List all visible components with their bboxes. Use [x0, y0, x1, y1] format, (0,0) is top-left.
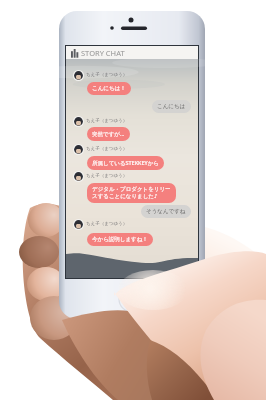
button[interactable]: 突然ですが…	[87, 127, 130, 141]
staticText: STORY CHAT	[81, 48, 125, 58]
staticText: ちえ子（まつゆう）	[86, 72, 128, 78]
staticText: ちえ子（まつゆう）	[86, 173, 128, 179]
staticText: デジタル・プロダクトをリリー	[92, 186, 171, 193]
staticText: スすることになりました♪	[92, 193, 158, 200]
staticText: ちえ子（まつゆう）	[86, 221, 128, 227]
button[interactable]: こんにちは！	[87, 82, 131, 95]
button[interactable]: STORY CHAT	[66, 46, 198, 59]
staticText: ちえ子（まつゆう）	[86, 146, 128, 152]
staticText: こんにちは！	[92, 85, 126, 92]
staticText: そうなんですね	[146, 208, 186, 215]
button[interactable]: 所属しているSTEKKEYから	[87, 156, 164, 170]
button[interactable]: 今から説明しますね！	[87, 233, 153, 246]
staticText: こんにちは	[157, 103, 186, 110]
button[interactable]: そうなんですね	[141, 205, 191, 218]
staticText: ちえ子（まつゆう）	[86, 118, 128, 124]
staticText: 今から説明しますね！	[92, 236, 148, 243]
staticText: 突然ですが…	[92, 130, 125, 138]
button[interactable]: こんにちは	[152, 100, 191, 113]
staticText: 所属しているSTEKKEYから	[92, 159, 159, 167]
button[interactable]: デジタル・プロダクトをリリー	[87, 183, 176, 203]
